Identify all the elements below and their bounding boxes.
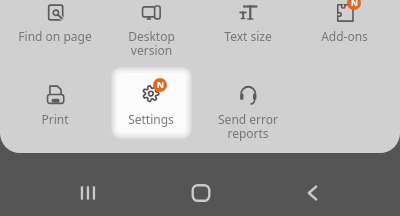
button[interactable]: Send error reports	[199, 83, 296, 153]
staticText: N	[157, 79, 164, 91]
button[interactable]: Home	[145, 170, 256, 216]
staticText: N	[351, 0, 358, 9]
staticText: Settings	[128, 111, 174, 127]
staticText: Add-ons	[321, 28, 368, 44]
button[interactable]: Text size	[199, 0, 296, 82]
staticText: Print	[41, 111, 69, 127]
staticText: Send error reports	[218, 111, 278, 142]
staticText: Find on page	[18, 28, 92, 44]
staticText: Desktop version	[128, 28, 175, 59]
button[interactable]: Print	[7, 83, 103, 153]
button[interactable]: Find on page	[7, 0, 103, 82]
button[interactable]: Desktop version	[103, 0, 199, 82]
button[interactable]: N	[296, 0, 393, 82]
button[interactable]: N	[103, 83, 199, 153]
staticText: Text size	[224, 28, 272, 44]
button[interactable]: Recent apps	[33, 170, 145, 216]
button[interactable]: Back	[256, 170, 367, 216]
